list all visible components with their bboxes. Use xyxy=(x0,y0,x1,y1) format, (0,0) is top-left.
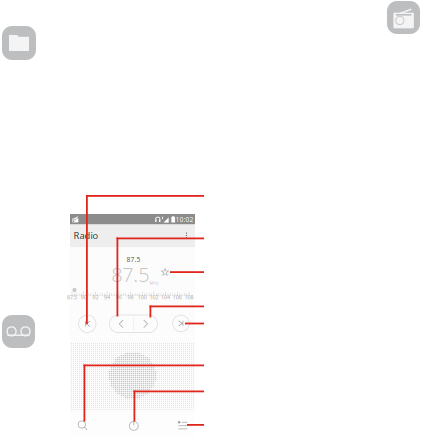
button[interactable]: Tune frequency xyxy=(109,315,157,333)
button[interactable]: Channel list xyxy=(169,413,197,437)
staticText: 10:02 xyxy=(175,215,193,224)
button[interactable]: Previous station xyxy=(79,315,96,332)
button[interactable]: More options xyxy=(180,224,193,246)
staticText: 90 xyxy=(81,294,87,301)
staticText: MHz xyxy=(150,280,159,286)
staticText: 87.5 xyxy=(111,261,149,287)
button[interactable]: Search stations xyxy=(69,413,97,437)
staticText: 96 xyxy=(116,294,122,301)
staticText: Radio xyxy=(73,229,98,242)
button[interactable]: Power xyxy=(120,413,148,437)
staticText: 108 xyxy=(184,294,193,301)
staticText: 106 xyxy=(173,294,182,301)
staticText: 102 xyxy=(149,294,158,301)
button[interactable]: Next station xyxy=(173,315,189,332)
staticText: 100 xyxy=(138,294,147,301)
staticText: 92 xyxy=(92,294,98,301)
staticText: 94 xyxy=(104,294,110,301)
staticText: 87.5 xyxy=(126,255,140,264)
button[interactable]: Add station to favourites xyxy=(161,268,169,276)
staticText: 98 xyxy=(127,294,133,301)
staticText: 87.5 xyxy=(67,294,77,301)
staticText: 104 xyxy=(161,294,170,301)
